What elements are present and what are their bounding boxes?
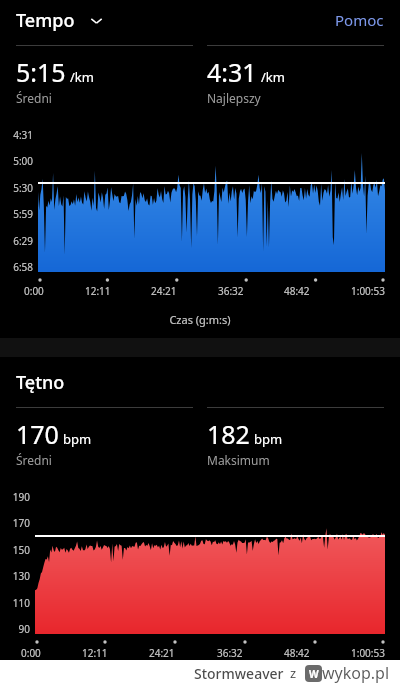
staticText: W	[309, 667, 319, 681]
staticText: 0:00	[24, 284, 44, 298]
staticText: 182	[207, 417, 250, 451]
staticText: Maksimum	[207, 452, 270, 468]
staticText: 5:30	[0, 181, 33, 195]
staticText: 48:42	[284, 284, 310, 298]
button[interactable]: Pomoc	[335, 10, 384, 30]
staticText: bpm	[63, 430, 92, 448]
staticText: 1:00:53	[351, 646, 385, 660]
staticText: /km	[261, 68, 285, 86]
staticText: 5:00	[0, 154, 33, 168]
staticText: z	[290, 664, 297, 682]
staticText: wykop.pl	[322, 662, 390, 684]
staticText: 5:15	[16, 55, 66, 89]
staticText: bpm	[254, 430, 283, 448]
button[interactable]: 170	[16, 407, 193, 468]
staticText: 0:00	[21, 646, 41, 660]
staticText: Średni	[16, 452, 52, 468]
staticText: 36:32	[217, 646, 243, 660]
staticText: Tętno	[16, 370, 65, 395]
staticText: 190	[0, 490, 30, 504]
staticText: 36:32	[218, 284, 244, 298]
staticText: 24:21	[149, 646, 175, 660]
button[interactable]: 4:31	[207, 45, 384, 106]
staticText: 12:11	[82, 646, 108, 660]
staticText: /km	[70, 68, 94, 86]
button[interactable]: Tętno	[16, 370, 65, 395]
staticText: 6:58	[0, 260, 33, 274]
staticText: Średni	[16, 90, 52, 106]
button[interactable]: 5:15	[16, 45, 193, 106]
staticText: 5:59	[0, 207, 33, 221]
staticText: Czas (g:m:s)	[0, 312, 400, 327]
button[interactable]: Tempo	[16, 8, 103, 33]
staticText: 150	[0, 543, 30, 557]
staticText: 48:42	[284, 646, 310, 660]
staticText: 90	[0, 622, 30, 636]
button[interactable]: 182	[207, 407, 384, 468]
staticText: 6:29	[0, 234, 33, 248]
staticText: 170	[0, 516, 30, 530]
staticText: 4:31	[0, 128, 33, 142]
staticText: 1:00:53	[351, 284, 385, 298]
staticText: Najlepszy	[207, 90, 261, 106]
staticText: 130	[0, 569, 30, 583]
staticText: 170	[16, 417, 59, 451]
staticText: 110	[0, 596, 30, 610]
staticText: Stormweaver	[194, 664, 284, 683]
staticText: Pomoc	[335, 10, 384, 30]
staticText: 4:31	[207, 55, 257, 89]
staticText: 24:21	[151, 284, 177, 298]
other: Expand	[90, 14, 103, 27]
staticText: 12:11	[85, 284, 111, 298]
staticText: Tempo	[16, 8, 75, 33]
